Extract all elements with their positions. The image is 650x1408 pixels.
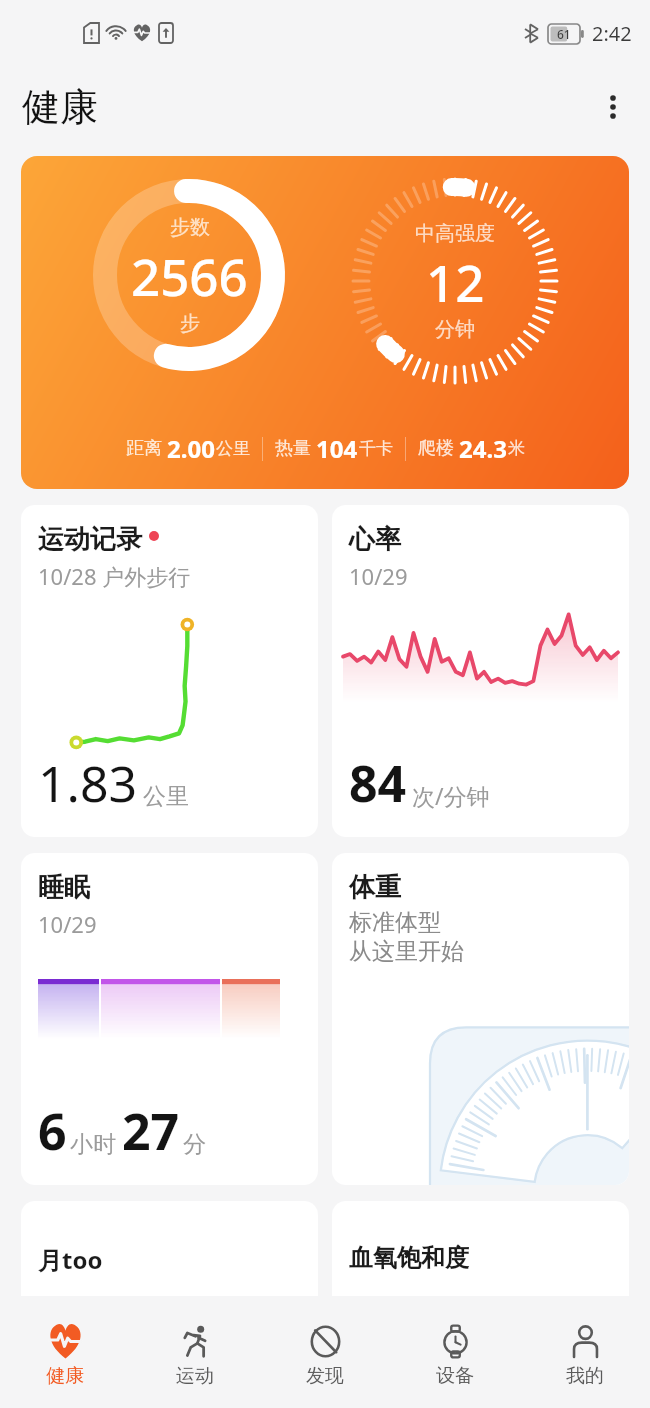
staticText: 体重: [349, 871, 401, 904]
button[interactable]: 血氧饱和度: [332, 1201, 629, 1296]
staticText: 健康: [46, 1364, 84, 1388]
button[interactable]: 心率: [332, 505, 629, 837]
staticText: 次/分钟: [412, 780, 490, 811]
staticText: 104: [316, 432, 358, 465]
staticText: 运动: [176, 1364, 214, 1388]
staticText: 睡眠: [38, 871, 90, 904]
staticText: 设备: [436, 1364, 474, 1388]
staticText: 米: [508, 438, 525, 459]
staticText: 6: [38, 1097, 67, 1165]
button[interactable]: 步数: [21, 156, 629, 489]
staticText: 我的: [566, 1364, 604, 1388]
staticText: 距离: [126, 437, 162, 460]
staticText: 月too: [38, 1243, 103, 1276]
button[interactable]: 体重: [332, 853, 629, 1185]
staticText: 步数: [170, 215, 210, 240]
staticText: 从这里开始: [349, 937, 464, 966]
staticText: 热量: [275, 437, 311, 460]
staticText: 10/28 户外步行: [38, 561, 191, 591]
staticText: 健康: [22, 83, 98, 131]
staticText: 84: [349, 749, 407, 817]
button[interactable]: 睡眠: [21, 853, 318, 1185]
staticText: 爬楼: [418, 437, 454, 460]
staticText: 血氧饱和度: [349, 1243, 469, 1273]
staticText: 小时: [70, 1130, 116, 1159]
staticText: 分钟: [435, 317, 475, 342]
button[interactable]: 运动: [130, 1302, 260, 1408]
button[interactable]: 发现: [260, 1302, 390, 1408]
button[interactable]: 我的: [520, 1302, 650, 1408]
staticText: 1.83: [38, 749, 138, 817]
staticText: 24.3: [459, 432, 507, 465]
button[interactable]: 运动记录: [21, 505, 318, 837]
button[interactable]: 健康: [0, 1302, 130, 1408]
staticText: 运动记录: [38, 523, 142, 556]
staticText: 10/29: [38, 909, 97, 939]
staticText: 10/29: [349, 561, 408, 591]
staticText: 2:42: [592, 20, 632, 47]
staticText: 中高强度: [415, 221, 495, 246]
button[interactable]: 设备: [390, 1302, 520, 1408]
button[interactable]: More options: [586, 80, 640, 134]
staticText: 2566: [131, 241, 248, 310]
staticText: 27: [122, 1097, 180, 1165]
staticText: 2.00: [167, 432, 215, 465]
staticText: 分: [183, 1130, 206, 1159]
staticText: 公里: [216, 438, 250, 459]
staticText: 步: [180, 311, 200, 336]
staticText: 61: [557, 26, 571, 42]
button[interactable]: 月too: [21, 1201, 318, 1296]
staticText: 12: [426, 247, 485, 316]
staticText: 千卡: [359, 438, 393, 459]
staticText: 公里: [143, 782, 189, 811]
staticText: 发现: [306, 1364, 344, 1388]
staticText: 标准体型: [349, 908, 441, 937]
staticText: 心率: [349, 523, 401, 556]
